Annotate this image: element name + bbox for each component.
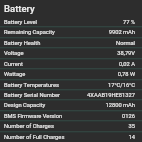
staticText: 4XAAB19HE81327 xyxy=(87,92,135,99)
button[interactable]: Number of Charges xyxy=(0,120,142,131)
staticText: BMS Firmware Version xyxy=(4,113,63,120)
button[interactable]: BMS Firmware Version xyxy=(0,110,142,120)
staticText: 0,78 W xyxy=(117,71,135,78)
button[interactable]: Battery Level xyxy=(0,16,142,26)
staticText: 35 xyxy=(128,123,135,130)
staticText: Battery Health xyxy=(4,40,41,47)
button[interactable]: Number of Full Charges xyxy=(0,131,142,141)
staticText: Wattage xyxy=(4,71,26,78)
staticText: Battery Temperatures xyxy=(4,82,60,89)
staticText: Voltage xyxy=(4,50,24,57)
staticText: 77 % xyxy=(122,19,135,26)
staticText: 17°C/16°C xyxy=(107,82,135,89)
staticText: 9902 mAh xyxy=(108,29,135,36)
button[interactable]: Wattage xyxy=(0,68,142,79)
staticText: 38,79V xyxy=(117,50,135,57)
staticText: Normal xyxy=(116,40,135,47)
button[interactable]: Battery Serial Number xyxy=(0,89,142,99)
button[interactable]: Battery Temperatures xyxy=(0,79,142,89)
staticText: 14 xyxy=(128,134,135,141)
button[interactable]: Voltage xyxy=(0,47,142,58)
staticText: Current xyxy=(4,61,23,68)
staticText: Battery Serial Number xyxy=(4,92,60,99)
staticText: Battery Level xyxy=(4,19,37,26)
button[interactable]: Current xyxy=(0,58,142,68)
staticText: Design Capacity xyxy=(4,102,46,109)
button[interactable]: Battery Health xyxy=(0,37,142,47)
button[interactable]: Battery xyxy=(0,0,142,16)
staticText: Battery xyxy=(4,3,35,14)
staticText: Remaining Capacity xyxy=(4,29,55,36)
staticText: 12800 mAh xyxy=(105,102,135,109)
staticText: Number of Full Charges xyxy=(4,134,65,141)
staticText: 0,02 A xyxy=(118,61,135,68)
button[interactable]: Remaining Capacity xyxy=(0,26,142,37)
button[interactable]: Design Capacity xyxy=(0,99,142,110)
staticText: 0126 xyxy=(122,113,135,120)
staticText: Number of Charges xyxy=(4,123,54,130)
